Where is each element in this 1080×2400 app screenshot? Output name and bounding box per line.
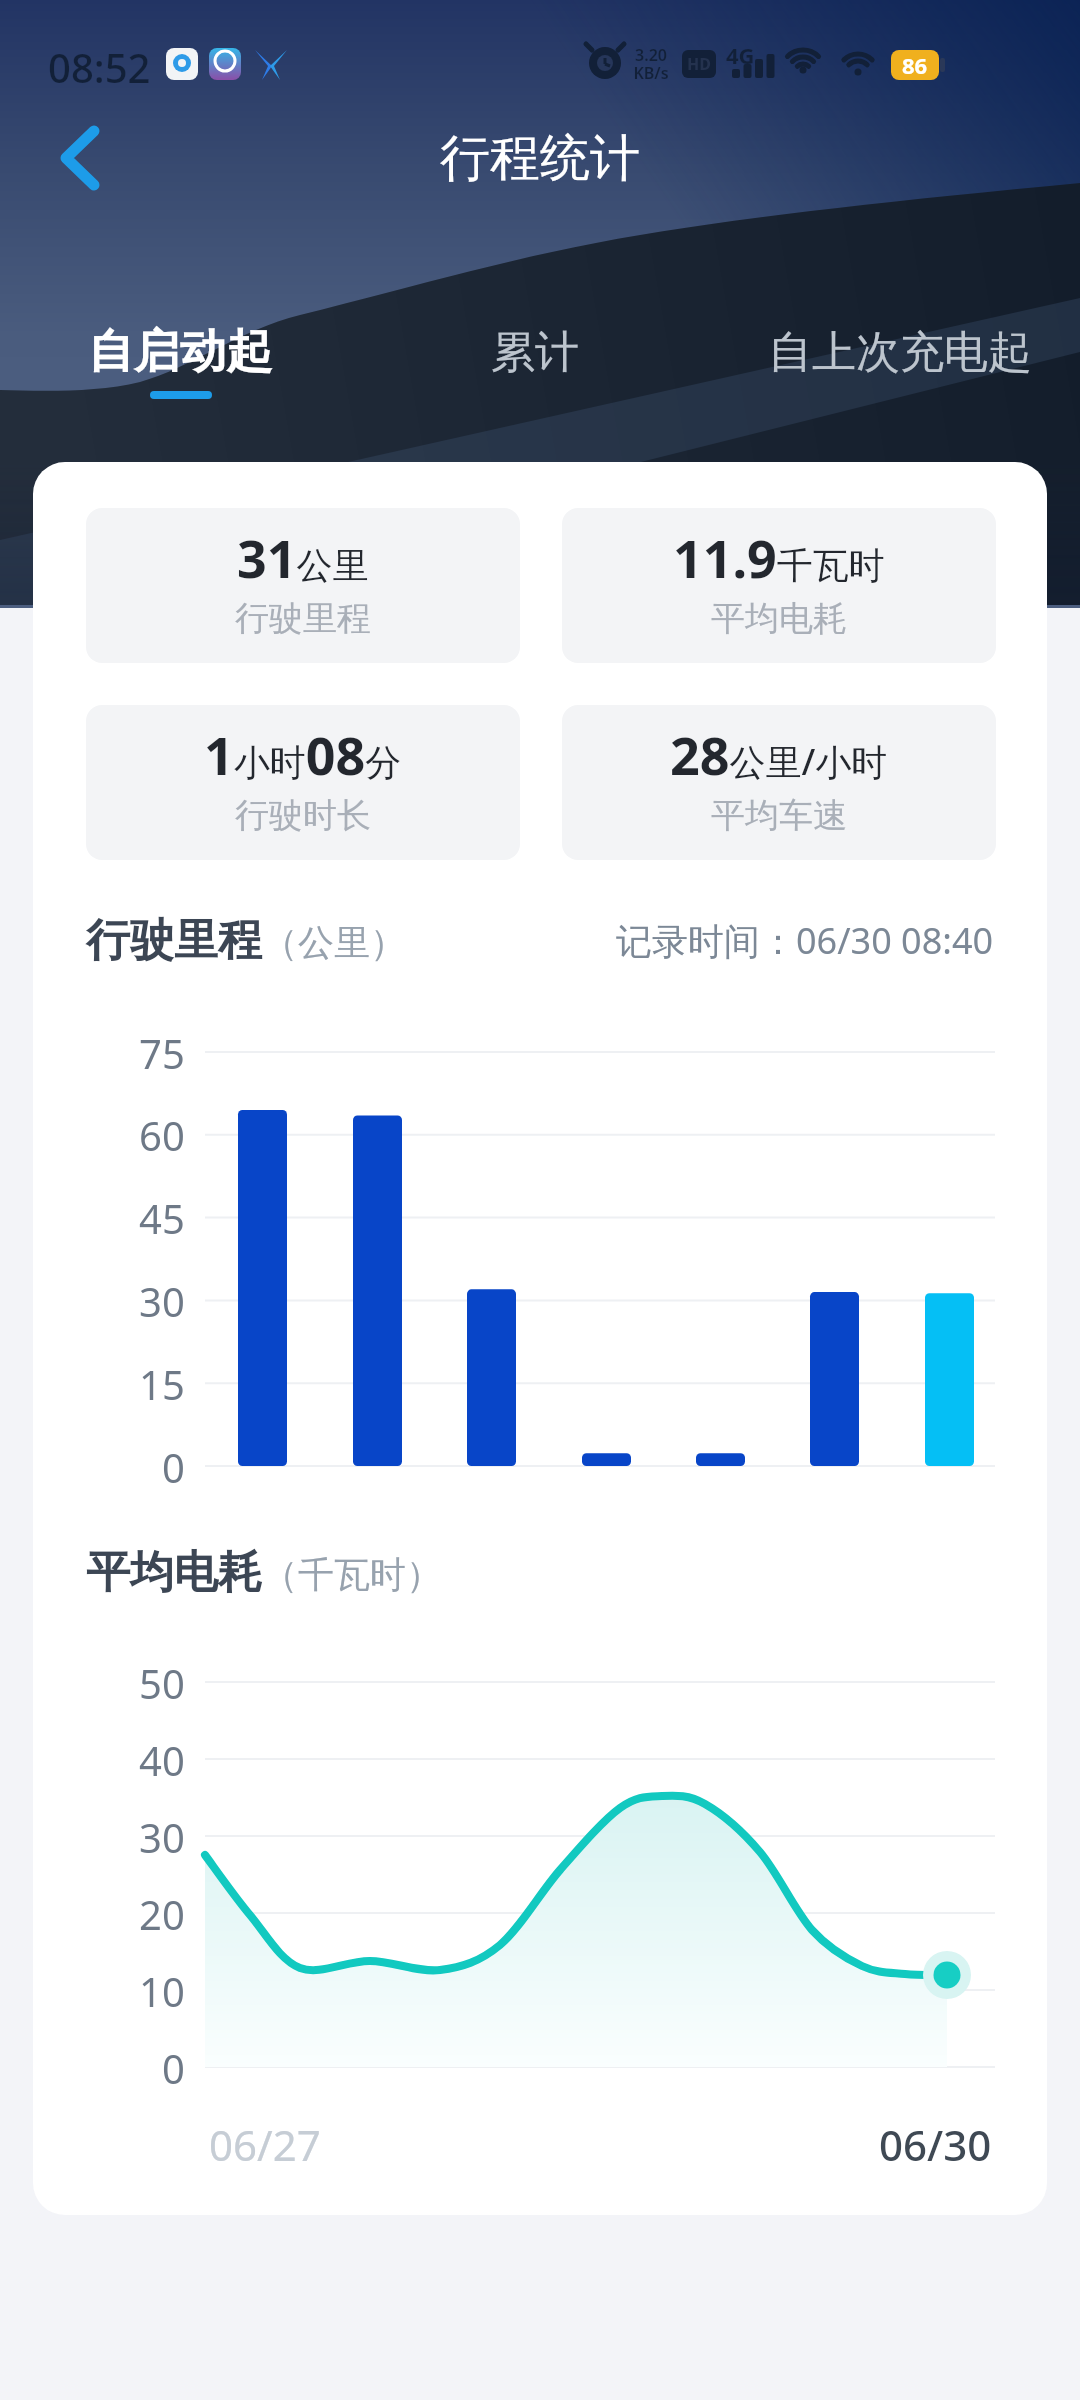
staticText: 行驶里程 xyxy=(235,597,371,640)
staticText: 行驶里程（公里） xyxy=(86,913,406,968)
staticText: 06/30 xyxy=(879,2116,992,2173)
staticText: 40 xyxy=(139,1733,185,1785)
staticText: 75 xyxy=(139,1026,185,1078)
staticText: 11.9千瓦时 xyxy=(673,522,885,593)
staticText: 记录时间：06/30 08:40 xyxy=(616,916,994,965)
staticText: 30 xyxy=(139,1274,185,1326)
staticText: 60 xyxy=(139,1108,185,1160)
staticText: 行驶时长 xyxy=(235,794,371,837)
staticText: 3.20 KB/s xyxy=(633,44,669,84)
staticText: 20 xyxy=(139,1887,185,1939)
staticText: 4G xyxy=(726,40,755,66)
staticText: 30 xyxy=(139,1810,185,1862)
staticText: 自启动起 xyxy=(88,323,272,381)
staticText: 45 xyxy=(139,1191,185,1243)
staticText: 累计 xyxy=(491,325,579,380)
staticText: 行程统计 xyxy=(440,127,640,190)
staticText: 平均车速 xyxy=(711,794,847,837)
staticText: 28公里/小时 xyxy=(670,719,888,790)
staticText: 06/27 xyxy=(209,2116,321,2173)
staticText: 0 xyxy=(162,1440,185,1492)
staticText: 自上次充电起 xyxy=(768,325,1032,380)
staticText: 86 xyxy=(902,50,928,80)
staticText: 0 xyxy=(162,2041,185,2093)
staticText: 15 xyxy=(139,1357,185,1409)
staticText: 1小时08分 xyxy=(204,719,402,790)
staticText: 08:52 xyxy=(48,40,151,88)
staticText: 平均电耗（千瓦时） xyxy=(86,1545,442,1600)
staticText: 50 xyxy=(139,1656,185,1708)
staticText: HD xyxy=(687,53,711,75)
staticText: 平均电耗 xyxy=(711,597,847,640)
staticText: 31公里 xyxy=(237,522,369,593)
staticText: 10 xyxy=(139,1964,185,2016)
